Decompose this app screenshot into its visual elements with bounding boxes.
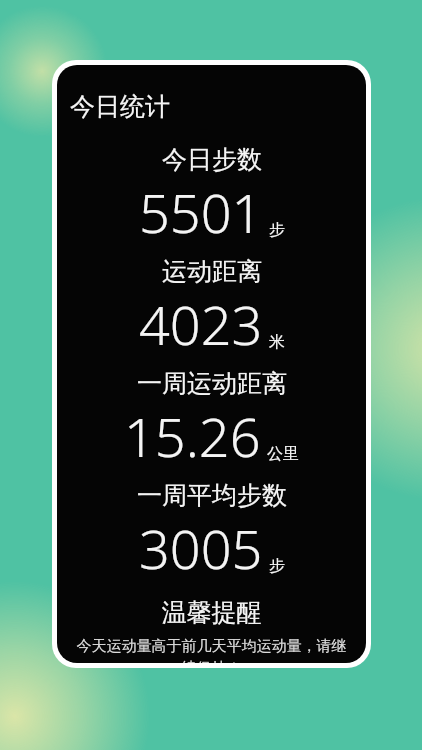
staticText: 今天运动量高于前几天平均运动量，请继续保持！ xyxy=(71,637,352,663)
staticText: 3005 xyxy=(139,511,263,585)
staticText: 步 xyxy=(269,220,285,240)
button[interactable]: 今日统计 xyxy=(57,65,366,663)
staticText: 温馨提醒 xyxy=(57,597,366,628)
staticText: 5501 xyxy=(139,175,263,249)
staticText: 一周运动距离 xyxy=(137,368,287,399)
staticText: 15.26 xyxy=(124,399,261,473)
staticText: 步 xyxy=(269,556,285,576)
staticText: 米 xyxy=(269,332,285,352)
staticText: 4023 xyxy=(139,287,263,361)
staticText: 今日统计 xyxy=(70,91,170,122)
staticText: 一周平均步数 xyxy=(137,480,287,511)
staticText: 今日步数 xyxy=(162,144,262,175)
staticText: 公里 xyxy=(267,444,299,464)
staticText: 运动距离 xyxy=(162,256,262,287)
